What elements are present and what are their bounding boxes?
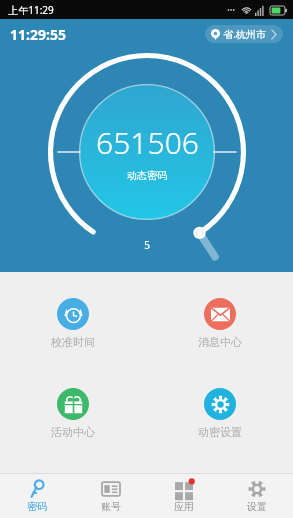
button[interactable]: 动密设置 bbox=[146, 386, 293, 441]
staticText: 动态密码 bbox=[127, 169, 167, 182]
staticText: 消息中心 bbox=[198, 335, 242, 349]
staticText: 应用 bbox=[174, 500, 194, 513]
staticText: 动密设置 bbox=[198, 425, 242, 439]
staticText: 校准时间 bbox=[51, 335, 95, 349]
button[interactable]: 校准时间 bbox=[0, 296, 146, 351]
staticText: 省.杭州市 bbox=[223, 27, 266, 41]
staticText: 活动中心 bbox=[51, 425, 95, 439]
staticText: 5 bbox=[144, 238, 150, 252]
button[interactable]: 消息中心 bbox=[146, 296, 293, 351]
staticText: 651506 bbox=[96, 122, 199, 163]
button[interactable]: 密码 bbox=[0, 474, 74, 518]
button[interactable]: 省.杭州市 bbox=[205, 25, 283, 43]
button[interactable]: 设置 bbox=[220, 474, 293, 518]
staticText: 账号 bbox=[101, 500, 121, 513]
staticText: 设置 bbox=[247, 500, 267, 513]
staticText: 密码 bbox=[27, 500, 47, 513]
button[interactable]: 活动中心 bbox=[0, 386, 146, 441]
staticText: 11:29:55 bbox=[10, 25, 66, 44]
button[interactable]: 账号 bbox=[74, 474, 147, 518]
button[interactable]: 应用 bbox=[147, 474, 220, 518]
staticText: 上午11:29 bbox=[8, 3, 54, 17]
